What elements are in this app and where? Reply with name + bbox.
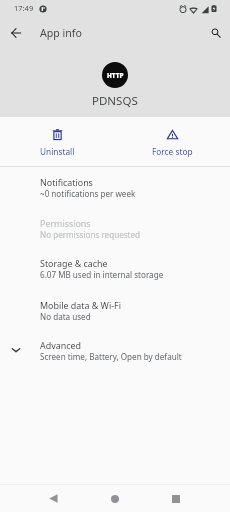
button[interactable]: Back (41, 486, 65, 510)
staticText: Uninstall (40, 146, 75, 157)
staticText: Storage & cache (40, 257, 108, 269)
staticText: Force stop (152, 146, 193, 157)
staticText: HTTP (107, 71, 124, 80)
staticText: 6.07 MB used in internal storage (40, 269, 164, 280)
staticText: Mobile data & Wi-Fi (40, 299, 121, 311)
button[interactable]: Uninstall (0, 126, 115, 160)
staticText: PDNSQS (92, 93, 138, 109)
button[interactable]: Storage & cache (0, 253, 230, 293)
staticText: 17:49 (14, 3, 34, 13)
staticText: Screen time, Battery, Open by default (40, 351, 182, 362)
button[interactable]: Notifications (0, 172, 230, 212)
staticText: ~0 notifications per week (40, 188, 136, 199)
staticText: App info (40, 26, 82, 40)
button[interactable]: Recent apps (164, 487, 188, 511)
button[interactable]: Permissions (0, 213, 230, 253)
button[interactable]: Advanced (0, 335, 230, 375)
button[interactable]: Home (103, 487, 127, 511)
button[interactable]: Search (204, 21, 228, 45)
button[interactable]: Force stop (115, 126, 230, 160)
staticText: No permissions requested (40, 229, 141, 240)
staticText: Notifications (40, 176, 93, 188)
staticText: Permissions (40, 217, 91, 229)
button[interactable]: Mobile data & Wi-Fi (0, 295, 230, 335)
button[interactable]: Navigate up (4, 21, 28, 45)
staticText: No data used (40, 311, 91, 322)
staticText: Advanced (40, 339, 81, 351)
